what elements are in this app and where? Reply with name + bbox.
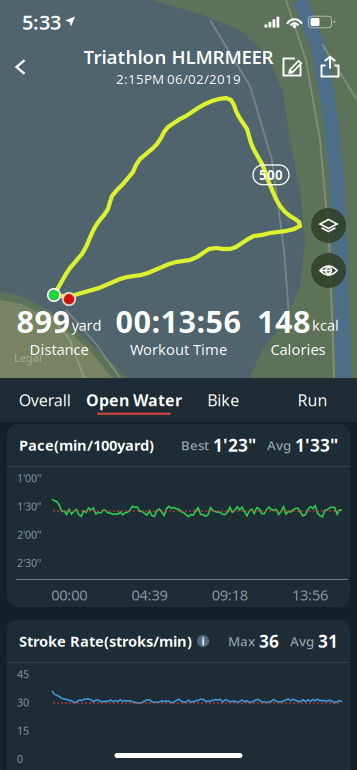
staticText: Max bbox=[228, 632, 255, 650]
staticText: 00:13:56 bbox=[115, 301, 241, 341]
button[interactable]: Overall bbox=[0, 378, 89, 422]
staticText: 30 bbox=[17, 695, 29, 709]
staticText: 899 bbox=[16, 301, 70, 341]
staticText: 15 bbox=[17, 724, 29, 738]
button[interactable]: Edit bbox=[273, 44, 311, 90]
button[interactable]: Bike bbox=[178, 378, 268, 422]
staticText: yard bbox=[71, 315, 101, 335]
staticText: 2:15PM 06/02/2019 bbox=[116, 70, 241, 88]
staticText: 500 bbox=[259, 166, 283, 184]
staticText: 1'23" bbox=[213, 433, 256, 456]
staticText: 04:39 bbox=[131, 585, 167, 604]
staticText: Stroke Rate(stroks/min) bbox=[19, 631, 192, 651]
staticText: 2'30" bbox=[17, 556, 41, 570]
staticText: 1'00" bbox=[17, 471, 41, 485]
staticText: Avg bbox=[290, 632, 314, 650]
staticText: Pace(min/100yard) bbox=[19, 435, 154, 455]
button[interactable]: Show details bbox=[311, 253, 346, 288]
staticText: 45 bbox=[17, 667, 29, 681]
staticText: Triathlon HLMRMEER bbox=[83, 44, 273, 69]
button[interactable]: Back bbox=[0, 45, 41, 89]
staticText: Legal bbox=[14, 351, 42, 365]
staticText: Avg bbox=[267, 436, 291, 454]
staticText: 31 bbox=[318, 629, 338, 652]
button[interactable]: Share bbox=[311, 44, 349, 90]
staticText: Calories bbox=[270, 339, 325, 359]
staticText: 0 bbox=[17, 752, 23, 766]
staticText: Workout Time bbox=[130, 339, 227, 359]
staticText: Overall bbox=[19, 389, 71, 411]
staticText: Distance bbox=[29, 339, 88, 359]
staticText: 00:00 bbox=[51, 585, 87, 604]
button[interactable]: Run bbox=[268, 378, 357, 422]
staticText: Open Water bbox=[86, 389, 182, 411]
button[interactable]: Open Water bbox=[89, 378, 178, 422]
staticText: kcal bbox=[312, 315, 339, 335]
button[interactable]: Map layers bbox=[311, 208, 346, 243]
staticText: 2'00" bbox=[17, 528, 41, 542]
staticText: 1'30" bbox=[17, 499, 41, 513]
staticText: i bbox=[201, 634, 204, 648]
staticText: 36 bbox=[259, 629, 279, 652]
staticText: 09:18 bbox=[212, 585, 248, 604]
staticText: 5:33 bbox=[22, 9, 61, 35]
staticText: 148 bbox=[257, 301, 311, 341]
staticText: Bike bbox=[207, 389, 239, 411]
staticText: 1'33" bbox=[295, 433, 338, 456]
staticText: 13:56 bbox=[292, 585, 328, 604]
staticText: Best bbox=[181, 436, 209, 454]
staticText: Run bbox=[297, 389, 327, 411]
